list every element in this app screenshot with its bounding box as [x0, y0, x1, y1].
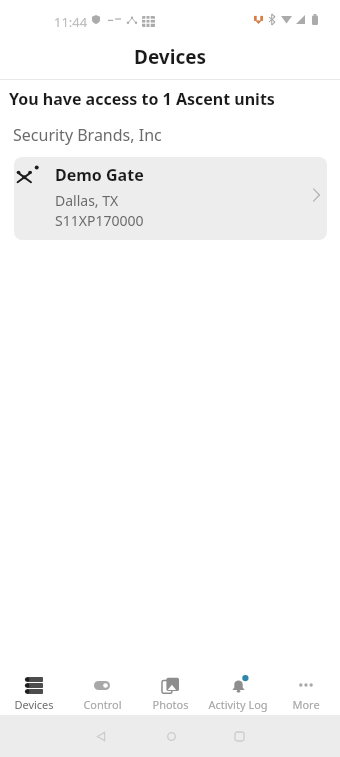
staticText: 11:44	[54, 13, 88, 31]
staticText: Security Brands, Inc	[13, 124, 162, 146]
button[interactable]: Devices	[0, 675, 68, 719]
button[interactable]: More	[272, 675, 340, 719]
staticText: Control	[83, 697, 122, 712]
staticText: Devices	[134, 44, 207, 70]
button[interactable]: Control	[68, 675, 136, 719]
staticText: Devices	[14, 697, 54, 712]
button[interactable]: Home	[155, 715, 187, 757]
staticText: Demo Gate	[55, 164, 144, 186]
staticText: Dallas, TX	[55, 191, 119, 210]
button[interactable]: Back	[85, 715, 117, 757]
button[interactable]: Recents	[223, 715, 255, 757]
staticText: Photos	[152, 697, 189, 712]
button[interactable]: Demo Gate	[14, 157, 327, 240]
button[interactable]: Activity Log	[204, 675, 272, 719]
staticText: S11XP170000	[55, 211, 144, 230]
button[interactable]: Photos	[136, 675, 204, 719]
staticText: More	[292, 697, 320, 712]
staticText: Activity Log	[208, 697, 268, 712]
staticText: You have access to 1 Ascent units	[9, 88, 275, 110]
